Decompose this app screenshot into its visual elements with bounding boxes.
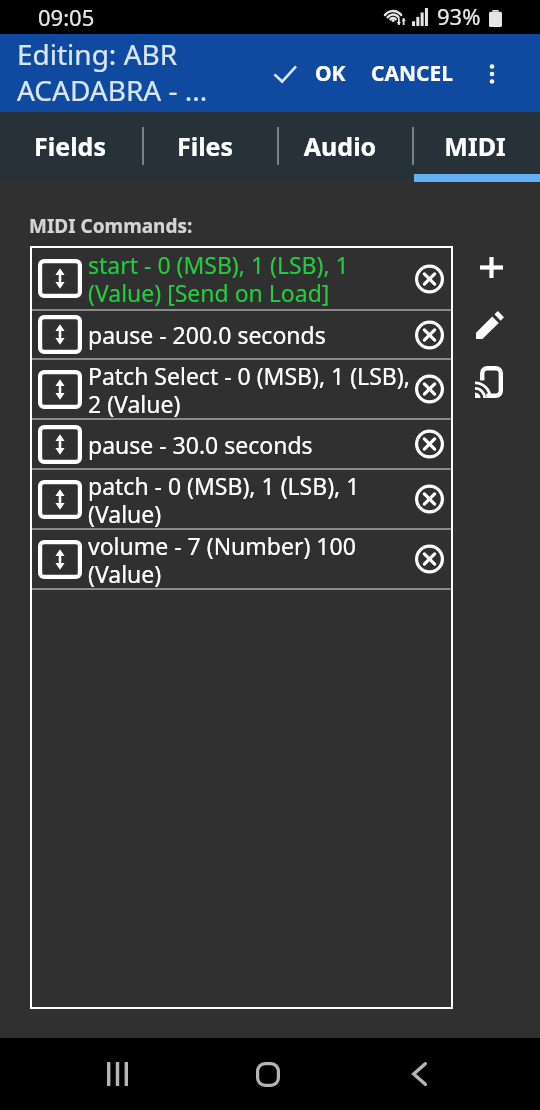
staticText: 93% [437, 1, 481, 31]
staticText: Patch Select - 0 (MSB), 1 (LSB), 2 (Valu… [88, 360, 413, 418]
button[interactable]: volume - 7 (Number) 100 (Value) [32, 530, 451, 588]
button[interactable]: Patch Select - 0 (MSB), 1 (LSB), 2 (Valu… [32, 360, 451, 418]
staticText: volume - 7 (Number) 100 (Value) [88, 530, 413, 588]
button[interactable]: pause - 30.0 seconds [32, 420, 451, 468]
button[interactable]: Remove command [407, 537, 451, 581]
staticText: CANCEL [371, 59, 454, 88]
staticText: Fields [5, 129, 135, 163]
staticText: MIDI Commands: [29, 213, 193, 239]
button[interactable]: More options [470, 52, 514, 96]
button[interactable]: start - 0 (MSB), 1 (LSB), 1 (Value) [Sen… [32, 248, 451, 309]
button[interactable]: Files [135, 112, 270, 182]
button[interactable]: Send to device [466, 359, 512, 405]
staticText: start - 0 (MSB), 1 (LSB), 1 (Value) [Sen… [88, 249, 413, 309]
button[interactable]: Home [239, 1045, 297, 1103]
button[interactable]: patch - 0 (MSB), 1 (LSB), 1 (Value) [32, 470, 451, 528]
button[interactable]: OK [264, 47, 355, 100]
staticText: Editing: ABR ACADABRA - ... [17, 35, 242, 109]
staticText: MIDI [410, 129, 540, 163]
staticText: 09:05 [38, 2, 95, 32]
button[interactable]: Fields [0, 112, 135, 182]
button[interactable]: Remove command [407, 313, 451, 357]
staticText: patch - 0 (MSB), 1 (LSB), 1 (Value) [88, 470, 413, 528]
staticText: pause - 30.0 seconds [88, 429, 413, 460]
button[interactable]: Remove command [407, 257, 451, 301]
staticText: OK [315, 59, 346, 88]
staticText: Audio [275, 129, 405, 163]
staticText: pause - 200.0 seconds [88, 319, 413, 350]
button[interactable]: Edit command [467, 302, 513, 348]
button[interactable]: CANCEL [355, 47, 470, 100]
button[interactable]: MIDI [405, 112, 540, 182]
button[interactable]: Add command [468, 244, 514, 290]
button[interactable]: Remove command [407, 367, 451, 411]
button[interactable]: Recents [88, 1045, 146, 1103]
button[interactable]: Remove command [407, 477, 451, 521]
button[interactable]: Back [390, 1045, 448, 1103]
button[interactable]: pause - 200.0 seconds [32, 311, 451, 358]
button[interactable]: Remove command [407, 422, 451, 466]
button[interactable]: Audio [270, 112, 405, 182]
staticText: Files [140, 129, 270, 163]
